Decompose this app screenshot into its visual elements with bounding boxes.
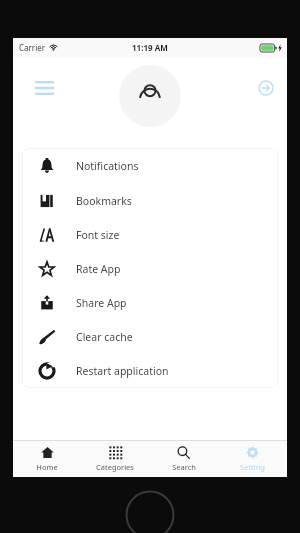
staticText: Rate App bbox=[76, 262, 121, 276]
staticText: Search bbox=[172, 462, 196, 472]
button[interactable]: Profile bbox=[119, 65, 181, 127]
button[interactable]: Home bbox=[13, 441, 81, 477]
button[interactable]: Rate App bbox=[22, 252, 278, 286]
button[interactable]: Clear cache bbox=[22, 320, 278, 354]
button[interactable]: Notifications bbox=[22, 148, 278, 183]
button[interactable]: Font size bbox=[22, 218, 278, 252]
button[interactable]: Bookmarks bbox=[22, 183, 278, 218]
button[interactable]: Restart application bbox=[22, 354, 278, 388]
staticText: Font size bbox=[76, 228, 120, 242]
staticText: Categories bbox=[96, 462, 134, 472]
staticText: Notifications bbox=[76, 159, 139, 173]
button[interactable]: Sign in bbox=[249, 71, 283, 105]
staticText: Clear cache bbox=[76, 330, 133, 344]
button[interactable]: Search bbox=[149, 441, 218, 477]
button[interactable]: Categories bbox=[81, 441, 149, 477]
staticText: Carrier bbox=[19, 42, 46, 53]
button[interactable]: Setting bbox=[218, 441, 287, 477]
staticText: Home bbox=[36, 462, 58, 472]
staticText: Setting bbox=[240, 462, 265, 472]
staticText: Bookmarks bbox=[76, 194, 132, 208]
button[interactable]: Menu bbox=[27, 71, 61, 105]
staticText: Share App bbox=[76, 296, 127, 310]
staticText: 11:19 AM bbox=[132, 42, 168, 53]
button[interactable]: Share App bbox=[22, 286, 278, 320]
staticText: Restart application bbox=[76, 364, 169, 378]
